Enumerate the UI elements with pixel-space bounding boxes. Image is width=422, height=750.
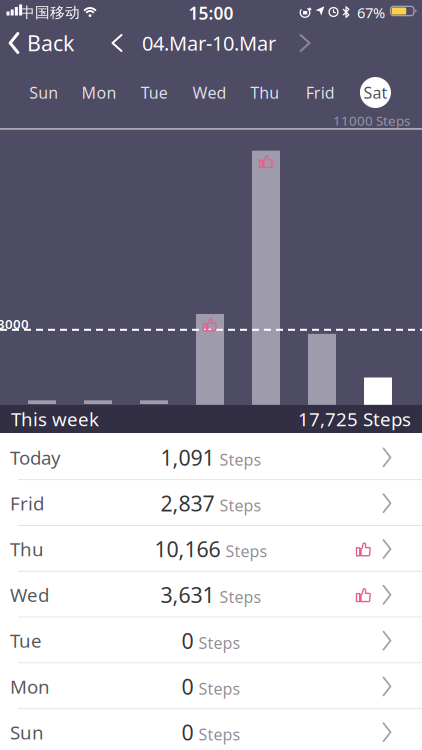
staticText: Wed [10,582,49,607]
staticText: 2,837 [160,489,214,517]
staticText: Steps [219,586,261,607]
staticText: 15:00 [188,1,233,24]
button[interactable]: Thu [0,526,422,572]
staticText: 17,725 Steps [298,407,411,431]
staticText: Tue [10,628,42,653]
staticText: Mon [81,82,116,103]
button[interactable]: Mon [71,77,127,108]
staticText: Thu [250,82,279,103]
button[interactable]: Frid [0,480,422,526]
button[interactable]: Back [0,25,74,61]
staticText: Frid [306,82,335,103]
button[interactable]: Thu [237,77,292,108]
staticText: 中国移动 [20,3,80,21]
staticText: Steps [198,632,240,653]
button[interactable]: Tue [127,77,182,108]
staticText: Tue [141,82,168,103]
staticText: Steps [198,724,240,745]
staticText: This week [11,407,99,431]
button[interactable]: Sun [0,709,422,750]
staticText: Wed [192,82,226,103]
staticText: 0 [181,718,193,746]
button[interactable]: Previous week [110,34,142,52]
staticText: 10,166 [154,535,220,563]
staticText: Sun [29,82,58,103]
staticText: 3000 [0,315,29,333]
button[interactable]: Frid [292,77,348,108]
button[interactable]: Next week [276,34,312,52]
staticText: Thu [10,537,44,561]
staticText: 0 [181,672,193,700]
staticText: 04.Mar-10.Mar [142,30,276,56]
staticText: Today [10,445,61,470]
button[interactable]: Wed [0,572,422,618]
staticText: Sun [10,720,44,745]
button[interactable]: Today [0,434,422,480]
staticText: Steps [219,495,261,516]
staticText: 0 [181,626,193,655]
staticText: Sat [363,82,387,103]
staticText: Back [27,29,74,57]
button[interactable]: Mon [0,663,422,709]
button[interactable]: Tue [0,618,422,663]
staticText: 3,631 [160,581,214,609]
staticText: 67% [357,3,385,22]
staticText: Frid [10,491,44,516]
staticText: Mon [10,674,50,699]
staticText: 11000 Steps [333,112,410,129]
button[interactable]: Sun [16,77,71,108]
button[interactable]: Sat [348,77,403,108]
staticText: 1,091 [160,443,214,471]
staticText: Steps [219,449,261,470]
button[interactable]: Wed [182,77,237,108]
staticText: Steps [225,540,267,562]
staticText: Steps [198,678,240,699]
